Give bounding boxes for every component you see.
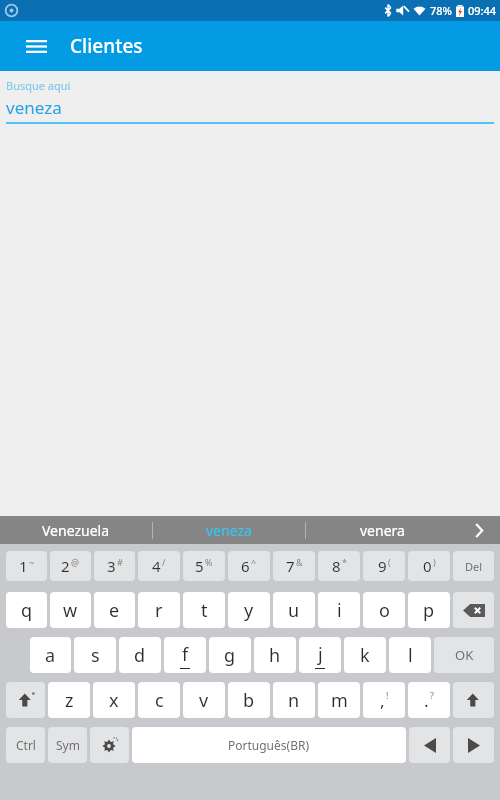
button[interactable]: z [48, 682, 90, 718]
staticText: ( [388, 556, 391, 568]
staticText: u [288, 598, 300, 623]
staticText: 2 [61, 556, 70, 576]
button[interactable]: f [164, 637, 206, 673]
staticText: m [331, 688, 348, 713]
button[interactable]: j [299, 637, 341, 673]
button[interactable]: Keyboard settings [90, 727, 129, 763]
button[interactable]: Sym [48, 727, 87, 763]
button[interactable]: k [344, 637, 386, 673]
button[interactable]: e [94, 592, 135, 628]
button[interactable]: 4 [138, 551, 180, 581]
button[interactable]: m [318, 682, 360, 718]
staticText: veneza [6, 96, 62, 119]
button[interactable]: q [6, 592, 47, 628]
staticText: ) [433, 556, 436, 568]
button[interactable]: veneza [153, 516, 305, 544]
staticText: 9 [378, 556, 387, 576]
staticText: ? [430, 689, 434, 701]
button[interactable]: p [408, 592, 450, 628]
button[interactable]: n [273, 682, 315, 718]
staticText: y [244, 598, 254, 623]
button[interactable]: venera [306, 516, 458, 544]
staticText: v [199, 688, 209, 713]
staticText: . [424, 689, 429, 712]
button[interactable]: b [228, 682, 270, 718]
staticText: h [269, 643, 281, 668]
staticText: r [155, 598, 163, 623]
staticText: # [117, 556, 123, 568]
button[interactable]: Shift [6, 682, 45, 718]
button[interactable]: 0 [408, 551, 450, 581]
staticText: t [201, 598, 208, 623]
button[interactable]: 9 [363, 551, 405, 581]
button[interactable]: o [363, 592, 405, 628]
staticText: 4 [152, 556, 161, 576]
staticText: ! [386, 689, 389, 701]
button[interactable]: t [183, 592, 225, 628]
button[interactable]: Move cursor right [453, 727, 494, 763]
staticText: j [318, 642, 323, 667]
button[interactable]: . [408, 682, 450, 718]
button[interactable]: Backspace [453, 592, 494, 628]
button[interactable]: , [363, 682, 405, 718]
button[interactable]: 3 [94, 551, 135, 581]
staticText: o [379, 598, 390, 623]
staticText: s [91, 643, 100, 668]
staticText: & [296, 556, 303, 568]
button[interactable]: r [138, 592, 180, 628]
staticText: b [243, 688, 255, 713]
staticText: 6 [241, 556, 250, 576]
button[interactable]: Del [453, 551, 494, 581]
button[interactable]: 6 [228, 551, 270, 581]
staticText: 7 [286, 556, 295, 576]
button[interactable]: i [318, 592, 360, 628]
staticText: d [134, 643, 146, 668]
staticText: Português(BR) [228, 737, 310, 753]
button[interactable]: x [93, 682, 135, 718]
staticText: ^ [251, 556, 257, 568]
button[interactable]: a [30, 637, 71, 673]
button[interactable]: s [74, 637, 116, 673]
button[interactable]: 8 [318, 551, 360, 581]
staticText: * [342, 556, 347, 568]
button[interactable]: More suggestions [458, 516, 500, 544]
button[interactable]: 7 [273, 551, 315, 581]
staticText: x [109, 688, 119, 713]
staticText: ~ [29, 556, 35, 568]
staticText: 5 [195, 556, 204, 576]
staticText: Busque aqui [6, 78, 71, 93]
button[interactable]: Ctrl [6, 727, 45, 763]
staticText: veneza [206, 521, 252, 540]
staticText: / [162, 556, 166, 568]
button[interactable]: y [228, 592, 270, 628]
button[interactable]: 1 [6, 551, 47, 581]
button[interactable]: h [254, 637, 296, 673]
staticText: Del [465, 559, 483, 574]
button[interactable]: c [138, 682, 180, 718]
staticText: l [408, 643, 413, 668]
staticText: f [182, 642, 189, 667]
button[interactable]: 5 [183, 551, 225, 581]
button[interactable]: Open navigation menu [20, 30, 52, 62]
button[interactable]: OK [434, 637, 494, 673]
button[interactable]: Venezuela [0, 516, 152, 544]
button[interactable]: l [389, 637, 431, 673]
button[interactable]: Busque aqui [0, 71, 500, 124]
staticText: % [205, 556, 213, 568]
button[interactable]: d [119, 637, 161, 673]
staticText: 3 [107, 556, 116, 576]
button[interactable]: 2 [50, 551, 91, 581]
staticText: q [21, 598, 33, 623]
button[interactable]: w [50, 592, 91, 628]
staticText: Venezuela [42, 521, 110, 540]
button[interactable]: Shift [453, 682, 494, 718]
button[interactable]: v [183, 682, 225, 718]
button[interactable]: u [273, 592, 315, 628]
button[interactable]: g [209, 637, 251, 673]
button[interactable]: Português(BR) [132, 727, 406, 763]
staticText: c [155, 688, 164, 713]
staticText: a [45, 643, 56, 668]
staticText: n [288, 688, 300, 713]
button[interactable]: Move cursor left [409, 727, 450, 763]
staticText: 1 [19, 556, 28, 576]
